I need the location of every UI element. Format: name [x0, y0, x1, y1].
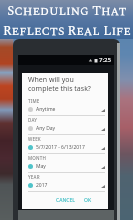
- staticText: WEEK: [28, 136, 41, 142]
- button[interactable]: CANCEL: [54, 195, 77, 206]
- button[interactable]: YEAR: [22, 174, 108, 193]
- button[interactable]: WEEK: [22, 136, 108, 155]
- staticText: When will you complete this task?: [28, 75, 100, 93]
- staticText: Any Day: [36, 125, 56, 132]
- button[interactable]: OK: [82, 195, 94, 206]
- button[interactable]: DAY: [22, 117, 108, 136]
- staticText: YEAR: [28, 174, 40, 180]
- staticText: 7:25: [99, 56, 111, 64]
- staticText: DAY: [28, 117, 38, 123]
- staticText: MONTH: [28, 155, 47, 161]
- staticText: CANCEL: [56, 197, 75, 204]
- button[interactable]: MONTH: [22, 155, 108, 174]
- staticText: TIME: [28, 98, 40, 104]
- staticText: OK: [84, 197, 92, 204]
- staticText: 5/7/2017 - 6/13/2017: [36, 144, 85, 151]
- button[interactable]: TIME: [22, 98, 108, 117]
- staticText: May: [36, 163, 46, 170]
- staticText: Scheduling That: [7, 1, 127, 21]
- staticText: Reflects Real Life: [3, 21, 131, 39]
- staticText: 2017: [36, 182, 48, 189]
- staticText: Anytime: [36, 106, 56, 113]
